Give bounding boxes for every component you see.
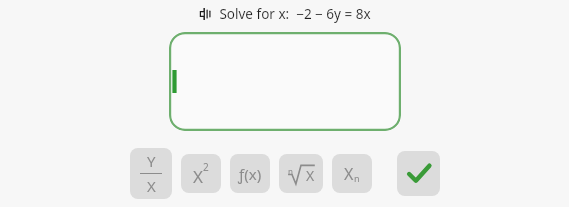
staticText: 2 [203,160,209,174]
button[interactable]: X [332,154,372,193]
button[interactable]: Submit answer [397,151,440,196]
staticText: n [288,166,293,177]
staticText: Solve for x: −2 − 6y = 8x [219,5,371,23]
staticText: n [354,172,360,184]
button[interactable] [169,32,401,131]
staticText: X [344,163,354,185]
staticText: ƒ(x) [238,164,262,184]
staticText: Y [147,151,156,171]
button[interactable]: ƒ(x) [230,154,270,193]
button[interactable]: X [181,154,221,193]
button[interactable]: n [279,154,323,193]
staticText: X [193,165,203,188]
button[interactable]: Play audio [198,6,214,22]
button[interactable]: Y [130,148,172,199]
staticText: X [306,166,315,185]
staticText: X [147,176,156,196]
